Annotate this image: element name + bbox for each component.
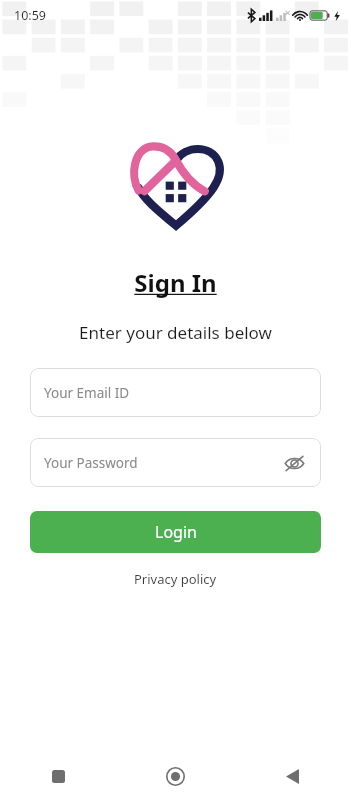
- button[interactable]: Show password: [281, 450, 307, 476]
- staticText: Sign In: [134, 266, 217, 299]
- button[interactable]: Your Password: [30, 438, 321, 487]
- button[interactable]: Back: [234, 752, 351, 800]
- staticText: 10:59: [14, 7, 46, 24]
- button[interactable]: Login: [30, 511, 321, 553]
- button[interactable]: Home: [117, 752, 234, 800]
- staticText: Your Email ID: [44, 384, 307, 402]
- button[interactable]: Your Email ID: [30, 368, 321, 417]
- button[interactable]: Recent apps: [0, 752, 117, 800]
- staticText: Enter your details below: [79, 321, 272, 344]
- button[interactable]: Privacy policy: [128, 567, 223, 591]
- staticText: Privacy policy: [134, 570, 217, 588]
- staticText: Your Password: [44, 454, 281, 472]
- staticText: Login: [155, 521, 197, 543]
